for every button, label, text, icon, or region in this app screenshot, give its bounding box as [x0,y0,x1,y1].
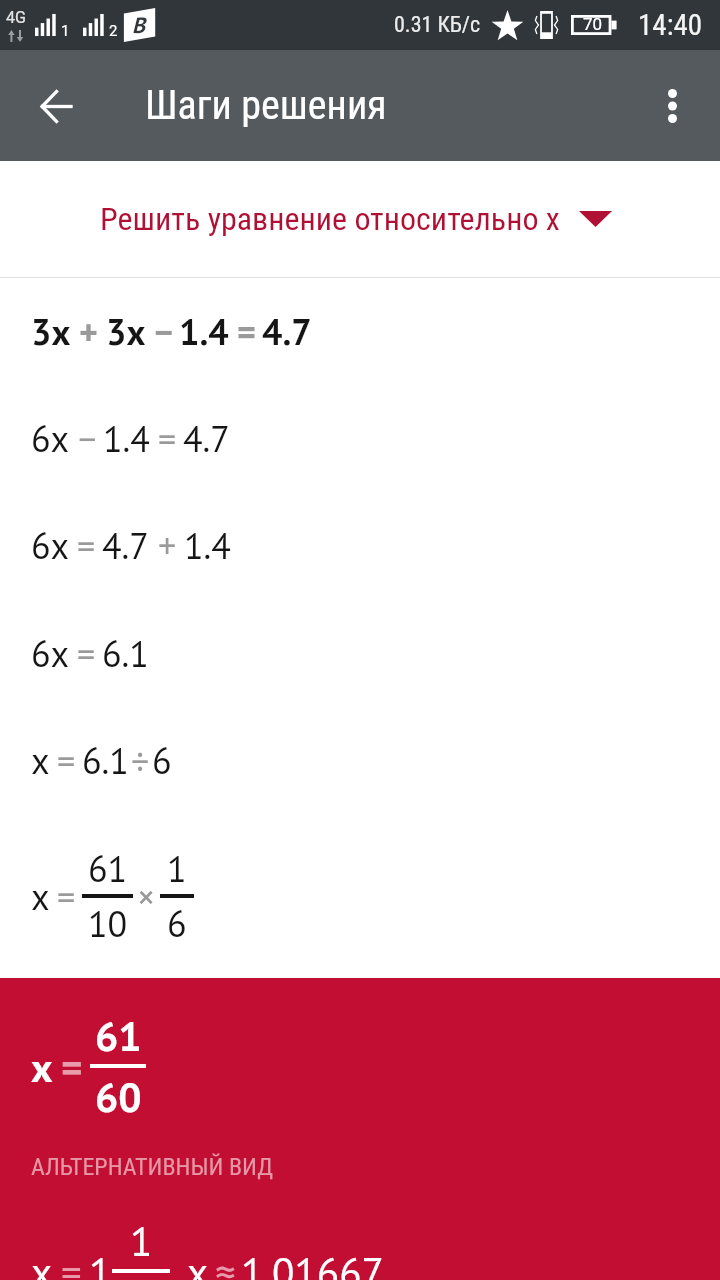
button[interactable]: 6x [0,385,720,492]
button[interactable]: 6x [0,492,720,599]
staticText: = [61,1040,83,1093]
staticText: 10 [88,900,128,947]
staticText: Решить уравнение относительно x [100,200,560,238]
staticText: x [31,1245,53,1280]
staticText: B [132,11,146,39]
staticText: = [158,415,177,462]
staticText: x [31,873,50,920]
staticText: 1.4 [179,308,229,355]
staticText: 70 [583,14,603,34]
staticText: 6 [167,900,187,947]
button[interactable]: Решить уравнение относительно x [100,200,612,238]
staticText: 14:40 [638,8,703,42]
staticText: 61 [88,845,128,892]
staticText: АЛЬТЕРНАТИВНЫЙ ВИД [31,1153,273,1181]
staticText: = [57,737,76,784]
staticText: 2 [109,22,118,40]
staticText: x [31,1040,53,1093]
staticText: × [137,873,156,920]
staticText: 60 [95,1070,142,1123]
staticText: 1 [167,845,187,892]
staticText: = [237,308,256,355]
staticText: 1 [89,1245,112,1280]
staticText: 6x [31,630,70,677]
staticText: = [61,1245,82,1280]
staticText: 4.7 [262,308,312,355]
button[interactable]: More options [642,76,702,136]
staticText: ≈ [215,1245,236,1280]
button[interactable]: x [0,814,720,978]
staticText: + [158,522,177,569]
staticText: 6x [31,522,70,569]
staticText: − [78,415,97,462]
staticText: 0.31 КБ/с [394,12,481,38]
staticText: 4.7 [102,522,149,569]
staticText: 61 [95,1009,142,1062]
staticText: Шаги решения [145,82,387,129]
staticText: = [57,873,76,920]
staticText: 4.7 [183,415,230,462]
staticText: − [154,308,173,355]
button[interactable]: x [0,978,720,1153]
other: Favorite [492,10,523,40]
staticText: 1.4 [103,415,150,462]
staticText: + [79,308,98,355]
button[interactable]: 3x [0,278,720,385]
staticText: = [77,630,96,677]
staticText: 3x [106,308,146,355]
staticText: ÷ [131,737,150,784]
button[interactable]: Back [22,72,90,140]
staticText: = [77,522,96,569]
staticText: 1.01667 [241,1245,384,1280]
staticText: 1 [61,22,70,40]
staticText: 1 [130,1214,153,1267]
staticText: 6 [152,737,172,784]
staticText: 6.1 [102,630,149,677]
staticText: 4G [6,8,26,27]
button[interactable]: 6x [0,599,720,707]
staticText: 1.4 [184,522,231,569]
staticText: 6x [31,415,70,462]
staticText: 3x [31,308,71,355]
staticText: 6.1 [82,737,129,784]
staticText: x [31,737,50,784]
staticText: x [187,1245,209,1280]
button[interactable]: x [0,707,720,814]
